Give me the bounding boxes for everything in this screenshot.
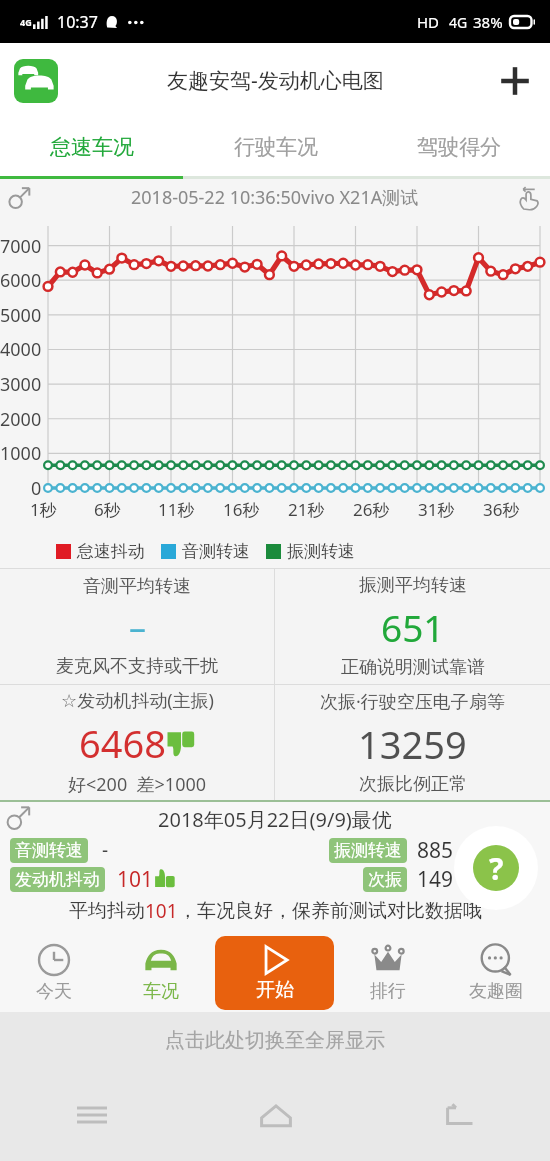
button[interactable]: Back xyxy=(367,1087,550,1143)
button[interactable]: Add xyxy=(492,58,538,104)
staticText: 1000 xyxy=(0,441,42,466)
staticText: 38% xyxy=(473,12,503,32)
staticText: 振测转速 xyxy=(287,541,355,562)
staticText: 今天 xyxy=(36,980,72,1003)
button[interactable]: ☆发动机抖动(主振) xyxy=(0,685,274,800)
staticText: HD xyxy=(417,12,440,32)
button[interactable]: 车况 xyxy=(107,934,215,1012)
staticText: 31秒 xyxy=(418,498,455,521)
staticText: 音测平均转速 xyxy=(83,575,191,598)
staticText: 16秒 xyxy=(223,498,260,521)
button[interactable]: App logo xyxy=(14,59,58,103)
staticText: 音测转速 xyxy=(15,840,83,861)
button[interactable]: 次振·行驶空压电子扇等 xyxy=(275,685,550,800)
button[interactable]: 音测平均转速 xyxy=(0,569,274,684)
staticText: 2000 xyxy=(0,407,42,432)
staticText: 车况 xyxy=(143,980,179,1003)
staticText: 正确说明测试靠谱 xyxy=(341,656,485,679)
staticText: ☆发动机抖动(主振) xyxy=(61,688,214,713)
staticText: 651 xyxy=(381,602,445,652)
button[interactable]: Home xyxy=(184,1087,367,1143)
other: Swipe hint xyxy=(516,186,540,210)
staticText: 好<200 差>1000 xyxy=(68,772,207,797)
button[interactable]: 行驶车况 xyxy=(184,118,367,176)
button[interactable]: 开始 xyxy=(215,936,334,1010)
staticText: 0 xyxy=(31,476,42,501)
staticText: 13259 xyxy=(358,718,467,770)
staticText: 怠速车况 xyxy=(50,134,134,160)
staticText: 麦克风不支持或干扰 xyxy=(56,655,218,678)
staticText: 怠速抖动 xyxy=(77,541,145,562)
button[interactable]: 排行 xyxy=(334,934,442,1012)
staticText: ? xyxy=(489,848,504,889)
staticText: 平均抖动 xyxy=(69,899,145,923)
button[interactable]: 驾驶得分 xyxy=(367,118,550,176)
staticText: 振测转速 xyxy=(334,840,402,861)
staticText: 次振比例正常 xyxy=(359,773,467,796)
staticText: 次振·行驶空压电子扇等 xyxy=(320,689,505,714)
staticText: 6秒 xyxy=(94,498,121,521)
staticText: 点击此处切换至全屏显示 xyxy=(165,1028,385,1053)
staticText: 7000 xyxy=(0,234,42,259)
staticText: 149 xyxy=(417,865,454,894)
staticText: 21秒 xyxy=(288,498,325,521)
staticText: – xyxy=(129,604,146,650)
staticText: 音测转速 xyxy=(182,541,250,562)
staticText: 次振 xyxy=(368,869,402,890)
staticText: 6468 xyxy=(79,717,166,769)
staticText: 2018-05-22 10:36:50vivo X21A测试 xyxy=(131,185,419,210)
staticText: 行驶车况 xyxy=(234,134,318,160)
staticText: 885 xyxy=(417,836,454,864)
staticText: 友趣圈 xyxy=(469,980,523,1003)
staticText: 26秒 xyxy=(353,498,390,521)
button[interactable]: 振测平均转速 xyxy=(275,569,550,684)
staticText: 开始 xyxy=(256,978,294,1002)
staticText: 3000 xyxy=(0,372,42,397)
button[interactable]: Help xyxy=(454,826,538,910)
staticText: 10:37 xyxy=(57,11,98,33)
staticText: 36秒 xyxy=(483,498,520,521)
staticText: 4G xyxy=(449,13,468,32)
staticText: 友趣安驾-发动机心电图 xyxy=(167,66,384,95)
button[interactable]: 怠速车况 xyxy=(0,118,184,176)
staticText: 101 xyxy=(117,865,154,894)
staticText: 11秒 xyxy=(158,498,195,521)
staticText: 4000 xyxy=(0,337,42,362)
staticText: - xyxy=(102,837,109,863)
button[interactable]: Recents xyxy=(0,1087,184,1143)
staticText: 排行 xyxy=(370,980,406,1003)
staticText: 发动机抖动 xyxy=(15,869,100,890)
staticText: 驾驶得分 xyxy=(417,134,501,160)
staticText: 2018年05月22日(9/9)最优 xyxy=(158,806,392,833)
staticText: ，车况良好，保养前测试对比数据哦 xyxy=(178,899,482,923)
staticText: 4G xyxy=(20,16,32,28)
staticText: 振测平均转速 xyxy=(359,574,467,597)
staticText: 101 xyxy=(145,898,178,924)
staticText: 6000 xyxy=(0,268,42,293)
staticText: 1秒 xyxy=(30,498,57,521)
button[interactable]: 点击此处切换至全屏显示 xyxy=(0,1012,550,1068)
staticText: 5000 xyxy=(0,303,42,328)
button[interactable]: 友趣圈 xyxy=(442,934,550,1012)
button[interactable]: 今天 xyxy=(0,934,107,1012)
